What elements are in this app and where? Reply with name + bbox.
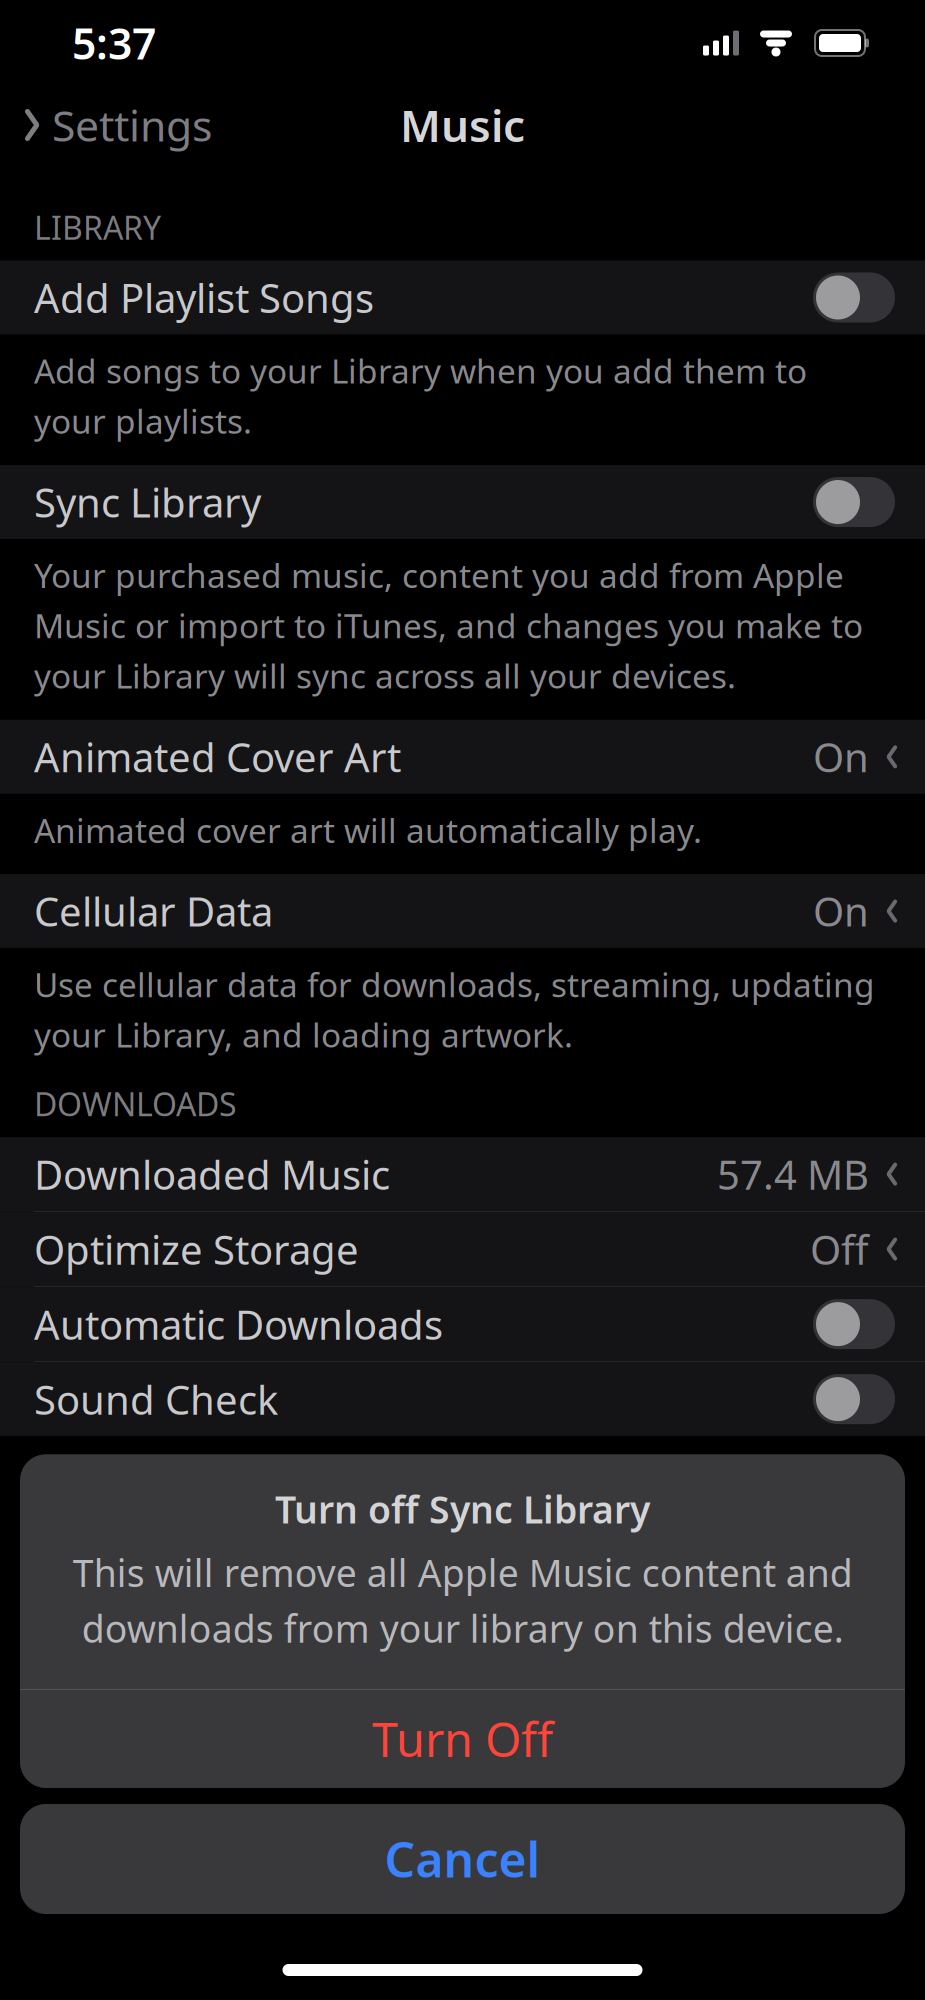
- button[interactable]: Add Playlist Songs: [0, 260, 925, 334]
- button[interactable]: Sync Library: [0, 465, 925, 539]
- staticText: Add songs to your Library when you add t…: [34, 348, 807, 443]
- staticText: Automatic Downloads: [34, 1297, 443, 1351]
- button[interactable]: Optimize Storage: [0, 1212, 925, 1286]
- staticText: Sound Check: [34, 1372, 278, 1426]
- staticText: LIBRARY: [34, 206, 161, 248]
- staticText: Optimize Storage: [34, 1222, 359, 1276]
- staticText: DOWNLOADS: [34, 1083, 237, 1125]
- button[interactable]: Downloaded Music: [0, 1137, 925, 1211]
- staticText: Music played on this iPhone will be seen…: [34, 1450, 799, 1595]
- staticText: Animated cover art will automatically pl…: [34, 808, 702, 852]
- staticText: Animated Cover Art: [34, 730, 401, 783]
- staticText: Turn Off: [372, 1708, 553, 1770]
- staticText: Your purchased music, content you add fr…: [34, 553, 863, 698]
- staticText: 57.4 MB: [717, 1147, 869, 1201]
- button[interactable]: Sound Check: [0, 1362, 925, 1436]
- button[interactable]: Turn Off: [20, 1690, 905, 1788]
- staticText: Off: [810, 1222, 869, 1276]
- staticText: Downloaded Music: [34, 1147, 390, 1201]
- staticText: On: [813, 884, 869, 938]
- button[interactable]: Settings: [0, 87, 212, 163]
- staticText: Settings: [52, 97, 212, 153]
- staticText: Cancel: [384, 1827, 540, 1891]
- button[interactable]: Animated Cover Art: [0, 720, 925, 794]
- staticText: Sync Library: [34, 475, 261, 529]
- button[interactable]: Automatic Downloads: [0, 1287, 925, 1361]
- staticText: Use cellular data for downloads, streami…: [34, 962, 875, 1057]
- staticText: This will remove all Apple Music content…: [72, 1548, 852, 1653]
- staticText: Add Playlist Songs: [34, 271, 374, 324]
- staticText: 5:37: [72, 15, 156, 71]
- button[interactable]: Cancel: [20, 1804, 905, 1914]
- staticText: Turn off Sync Library: [275, 1484, 650, 1534]
- staticText: Music: [400, 96, 525, 154]
- staticText: On: [813, 730, 869, 783]
- staticText: Cellular Data: [34, 884, 273, 938]
- button[interactable]: Cellular Data: [0, 874, 925, 948]
